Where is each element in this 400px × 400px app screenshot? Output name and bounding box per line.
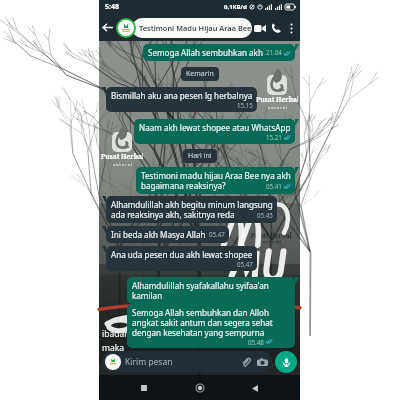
button[interactable]: Semoga Allah sembuhkan dan Alloh angkat …	[127, 304, 295, 348]
staticText: Alhamdulillah syafakallahu syifaa'an kam…	[132, 280, 269, 301]
staticText: Testimoni madu hijau Araa Bee nya akh ba…	[141, 170, 291, 191]
button[interactable]: Camera	[254, 354, 270, 370]
button[interactable]: Call	[268, 16, 284, 40]
button[interactable]: Kirim pesan	[102, 351, 272, 372]
staticText: n a t u r a l	[268, 105, 287, 110]
staticText: 5:48	[105, 2, 119, 12]
button[interactable]: Video call	[252, 16, 268, 40]
staticText: 05.48	[248, 338, 264, 345]
staticText: Kemarin	[186, 69, 214, 79]
staticText: Bismillah aku ana pesen lg herbalnya	[111, 90, 253, 101]
staticText: Semoga Allah sembuhkan dan Alloh angkat …	[132, 307, 273, 338]
button[interactable]: Ana uda pesen dua akh lewat shopee	[106, 246, 257, 271]
button[interactable]: Alhamdulillah syafakallahu syifaa'an kam…	[127, 277, 295, 304]
staticText: 15.21	[266, 133, 282, 141]
button[interactable]: Recents	[133, 377, 155, 399]
staticText: 21.04	[266, 48, 282, 56]
button[interactable]: Voice message	[275, 351, 297, 373]
staticText: Ana uda pesen dua akh lewat shopee	[111, 249, 253, 260]
button[interactable]: Testimoni madu hijau Araa Bee nya akh ba…	[136, 167, 295, 194]
staticText: Hari ini	[188, 151, 212, 161]
button[interactable]: Back	[244, 377, 266, 399]
button[interactable]: Back	[99, 15, 116, 40]
button[interactable]: Attach	[238, 354, 254, 370]
staticText: Alhamdulillah akh begitu minum langsung …	[111, 199, 273, 220]
staticText: ibadah	[102, 328, 130, 340]
staticText: 05.41	[266, 182, 282, 190]
button[interactable]: More options	[284, 16, 298, 40]
button[interactable]: Bismillah aku ana pesen lg herbalnya	[106, 87, 257, 112]
staticText: 05.45	[257, 211, 273, 219]
button[interactable]: Ini beda akh Masya Allah	[106, 226, 229, 243]
button[interactable]: Semoga Allah sembuhkan akh	[143, 44, 295, 61]
staticText: Pusat Herbal	[101, 152, 143, 161]
staticText: 05.47	[237, 260, 253, 268]
staticText: Testimoni Madu Hijau Araa Bee	[139, 23, 252, 33]
button[interactable]: Home	[189, 377, 211, 399]
staticText: Pusat Herbal	[251, 231, 292, 239]
button[interactable]: Alhamdulillah akh begitu minum langsung …	[106, 196, 277, 223]
staticText: 05.47	[209, 230, 225, 238]
staticText: n a t u r a l	[263, 239, 281, 244]
staticText: Semoga Allah sembuhkan akh	[148, 47, 263, 58]
staticText: Naam akh lewat shopee atau WhatsApp	[139, 122, 291, 133]
button[interactable]: Testimoni Madu Hijau Araa Bee	[116, 18, 252, 38]
staticText: Kirim pesan	[125, 356, 238, 368]
staticText: 0,1KB/d	[224, 3, 247, 11]
staticText: n a t u r a l	[113, 162, 132, 167]
staticText: Pusat Herbal	[256, 95, 298, 104]
button[interactable]: Naam akh lewat shopee atau WhatsApp	[134, 119, 295, 144]
staticText: maka	[102, 342, 125, 354]
staticText: 15.15	[237, 101, 253, 109]
staticText: Ini beda akh Masya Allah	[111, 229, 206, 240]
